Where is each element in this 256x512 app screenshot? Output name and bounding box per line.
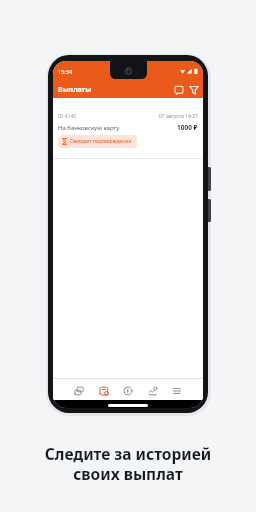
button[interactable] xyxy=(173,84,185,96)
staticText: 15:34 xyxy=(58,68,73,75)
button[interactable] xyxy=(170,384,184,398)
button[interactable] xyxy=(121,384,135,398)
staticText: ID 4146 xyxy=(58,113,77,120)
button[interactable] xyxy=(146,384,160,398)
staticText: Выплаты xyxy=(58,85,92,95)
staticText: 07 августа 14:27 xyxy=(159,113,198,120)
button[interactable] xyxy=(72,384,86,398)
button[interactable] xyxy=(97,384,111,398)
staticText: 1000 ₽ xyxy=(177,123,198,132)
staticText: Ожидает подтверждения xyxy=(70,138,132,145)
staticText: На банковскую карту xyxy=(58,124,120,132)
staticText: Следите за историей своих выплат xyxy=(0,443,256,484)
button[interactable] xyxy=(188,84,200,96)
button[interactable]: ID 4146 xyxy=(53,98,203,159)
